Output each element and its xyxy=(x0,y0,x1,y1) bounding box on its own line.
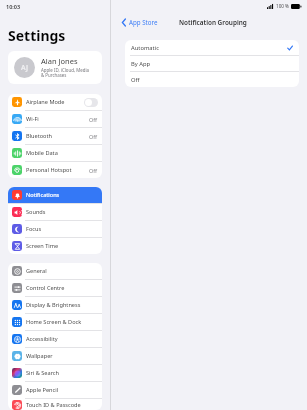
button[interactable]: Personal Hotspot xyxy=(8,162,102,178)
staticText: Notification Grouping xyxy=(179,18,247,27)
button[interactable]: Apple Pencil xyxy=(8,382,102,398)
button[interactable]: Display & Brightness xyxy=(8,297,102,313)
staticText: Home Screen & Dock xyxy=(26,318,98,326)
staticText: AJ xyxy=(21,63,28,73)
staticText: Control Centre xyxy=(26,284,98,292)
button[interactable]: Automatic xyxy=(125,40,299,55)
button[interactable]: Wallpaper xyxy=(8,348,102,364)
staticText: 10:03 xyxy=(6,3,21,10)
staticText: Screen Time xyxy=(26,242,98,250)
staticText: Off xyxy=(89,116,97,123)
staticText: Off xyxy=(89,167,97,174)
staticText: Sounds xyxy=(26,208,98,216)
staticText: Apple Pencil xyxy=(26,386,98,394)
staticText: Display & Brightness xyxy=(26,301,98,309)
staticText: By App xyxy=(131,60,293,68)
staticText: Siri & Search xyxy=(26,369,98,377)
staticText: Off xyxy=(89,133,97,140)
staticText: Automatic xyxy=(131,44,287,52)
button[interactable]: Airplane Mode xyxy=(8,94,102,110)
button[interactable]: Mobile Data xyxy=(8,145,102,161)
button[interactable]: Bluetooth xyxy=(8,128,102,144)
button[interactable]: Touch ID & Passcode xyxy=(8,399,102,410)
staticText: Settings xyxy=(8,26,66,45)
staticText: Personal Hotspot xyxy=(26,166,89,174)
button[interactable]: Screen Time xyxy=(8,238,102,254)
staticText: Off xyxy=(131,76,293,84)
button[interactable]: Off xyxy=(125,72,299,87)
staticText: Notifications xyxy=(26,191,98,199)
button[interactable]: General xyxy=(8,263,102,279)
staticText: Airplane Mode xyxy=(26,98,84,106)
button[interactable]: Siri & Search xyxy=(8,365,102,381)
staticText: 100 % xyxy=(276,3,289,9)
staticText: App Store xyxy=(129,18,158,26)
staticText: Wi-Fi xyxy=(26,115,89,123)
staticText: General xyxy=(26,267,98,275)
button[interactable]: Accessibility xyxy=(8,331,102,347)
staticText: Touch ID & Passcode xyxy=(26,401,98,409)
button[interactable]: App Store xyxy=(120,16,160,28)
staticText: Focus xyxy=(26,225,98,233)
staticText: Alan Jones xyxy=(41,56,78,66)
button[interactable]: Wi-Fi xyxy=(8,111,102,127)
staticText: Accessibility xyxy=(26,335,98,343)
button[interactable]: Home Screen & Dock xyxy=(8,314,102,330)
button[interactable]: Focus xyxy=(8,221,102,237)
button[interactable]: Notifications xyxy=(8,187,102,203)
staticText: Mobile Data xyxy=(26,149,98,157)
staticText: Apple ID, iCloud, Media & Purchases xyxy=(41,67,89,79)
staticText: Bluetooth xyxy=(26,132,89,140)
button[interactable]: Airplane Mode toggle xyxy=(84,98,98,107)
button[interactable]: AJ xyxy=(8,51,102,84)
button[interactable]: Control Centre xyxy=(8,280,102,296)
staticText: Wallpaper xyxy=(26,352,98,360)
button[interactable]: Sounds xyxy=(8,204,102,220)
button[interactable]: By App xyxy=(125,56,299,71)
